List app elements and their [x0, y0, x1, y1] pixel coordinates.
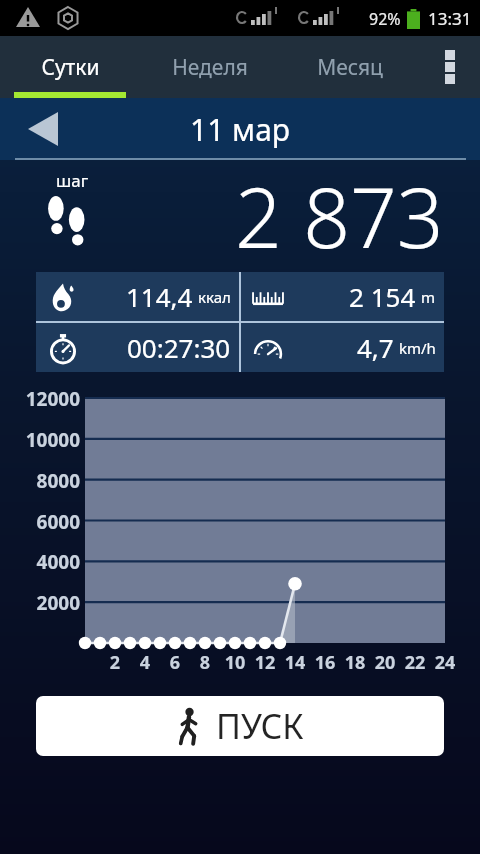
button[interactable]: 114,4 — [36, 272, 239, 321]
staticText: 14 — [279, 650, 311, 675]
staticText: Месяц — [317, 53, 383, 82]
button[interactable]: Previous day — [14, 103, 72, 155]
staticText: 114,4 — [126, 279, 193, 314]
staticText: km/h — [399, 338, 436, 358]
button[interactable]: Неделя — [140, 36, 280, 98]
staticText: 10 — [219, 650, 251, 675]
staticText: шаг — [56, 169, 89, 192]
button[interactable]: ПУСК — [36, 696, 444, 756]
button[interactable]: More options — [420, 36, 480, 98]
staticText: 4 — [129, 650, 161, 675]
button[interactable]: 4,7 — [241, 323, 444, 372]
staticText: Сутки — [41, 53, 100, 82]
staticText: 24 — [429, 650, 461, 675]
staticText: 2 873 — [235, 160, 444, 260]
staticText: 2 — [99, 650, 131, 675]
button[interactable]: 00:27:30 — [36, 323, 239, 372]
staticText: m — [421, 287, 436, 307]
staticText: 13:31 — [428, 7, 472, 30]
staticText: ПУСК — [216, 703, 304, 749]
staticText: 92% — [369, 8, 401, 30]
staticText: 00:27:30 — [127, 330, 231, 365]
staticText: 4,7 — [357, 330, 394, 365]
staticText: 6 — [159, 650, 191, 675]
staticText: 22 — [399, 650, 431, 675]
staticText: Неделя — [172, 53, 248, 82]
staticText: 12 — [249, 650, 281, 675]
staticText: 16 — [309, 650, 341, 675]
staticText: 6000 — [0, 509, 80, 535]
staticText: ккал — [198, 287, 231, 307]
staticText: 2 154 — [349, 279, 416, 314]
button[interactable]: Сутки — [0, 36, 140, 98]
button[interactable]: 2 154 — [241, 272, 444, 321]
staticText: 2000 — [0, 590, 80, 616]
button[interactable]: Месяц — [280, 36, 420, 98]
staticText: 12000 — [0, 386, 80, 412]
staticText: 4000 — [0, 549, 80, 575]
staticText: 8000 — [0, 468, 80, 494]
staticText: 18 — [339, 650, 371, 675]
staticText: 11 мар — [190, 109, 291, 150]
staticText: 8 — [189, 650, 221, 675]
staticText: 10000 — [0, 427, 80, 453]
staticText: 20 — [369, 650, 401, 675]
